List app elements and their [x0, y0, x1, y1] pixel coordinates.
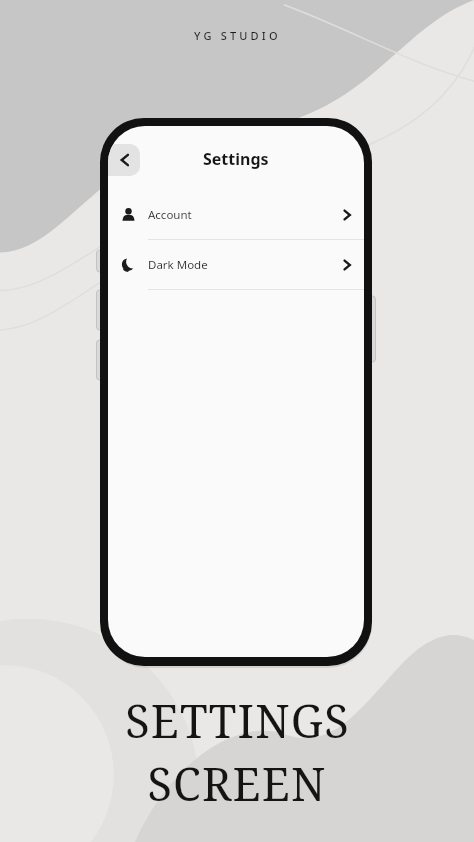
staticText: YG STUDIO [194, 28, 281, 43]
button[interactable]: Dark Mode [108, 240, 364, 290]
button[interactable]: Account [108, 190, 364, 240]
button[interactable]: Back [108, 144, 140, 176]
staticText: Settings [203, 148, 269, 170]
staticText: SETTINGS [125, 690, 350, 751]
staticText: Dark Mode [148, 257, 330, 273]
staticText: Account [148, 207, 330, 223]
staticText: SCREEN [147, 753, 327, 814]
